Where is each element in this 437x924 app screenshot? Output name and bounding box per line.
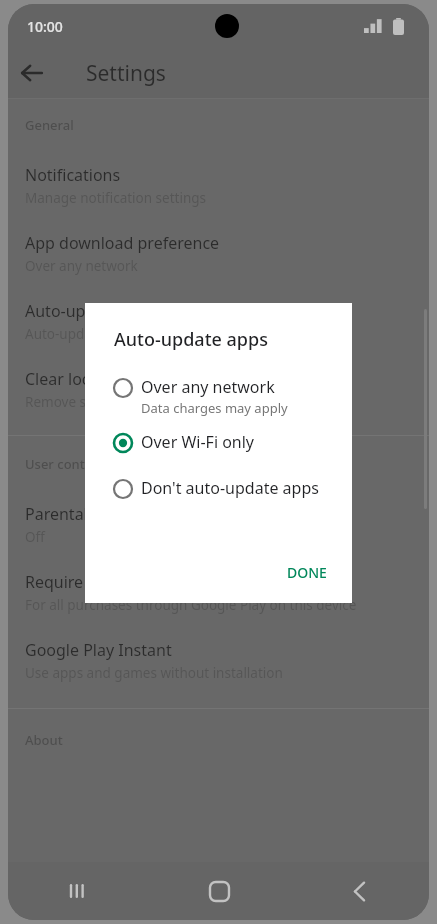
staticText: Notifications xyxy=(25,164,121,186)
button[interactable]: Require authentication for purchases xyxy=(8,560,429,628)
staticText: For all purchases through Google Play on… xyxy=(25,596,357,614)
button[interactable]: Recents xyxy=(8,862,149,920)
staticText: Don't auto-update apps xyxy=(141,477,319,499)
button[interactable]: DONE xyxy=(276,556,338,589)
staticText: Parental controls xyxy=(25,503,153,525)
staticText: Over any network xyxy=(25,257,138,275)
staticText: Over any network xyxy=(141,376,275,398)
staticText: Clear local search history xyxy=(25,368,213,390)
staticText: App download preference xyxy=(25,232,220,254)
button[interactable]: Over Wi-Fi only xyxy=(85,429,352,457)
staticText: Off xyxy=(25,528,45,546)
button[interactable]: Over any network xyxy=(85,374,352,419)
staticText: Google Play Instant xyxy=(25,639,172,661)
staticText: DONE xyxy=(287,563,327,582)
staticText: Over Wi-Fi only xyxy=(141,431,255,453)
staticText: Auto-update apps over Wi-Fi only xyxy=(25,325,235,343)
staticText: 10:00 xyxy=(27,17,63,36)
button[interactable]: Parental controls xyxy=(8,492,429,560)
button[interactable]: App download preference xyxy=(8,221,429,289)
staticText: Remove searches on this device xyxy=(25,393,226,411)
staticText: User controls xyxy=(25,455,108,473)
staticText: Auto-update apps xyxy=(25,300,160,322)
staticText: Require authentication for purchases xyxy=(25,571,304,593)
button[interactable]: Auto-update apps xyxy=(8,289,429,357)
button[interactable]: Don't auto-update apps xyxy=(85,475,352,503)
button[interactable]: Back xyxy=(289,862,429,920)
button[interactable]: Notifications xyxy=(8,153,429,221)
button[interactable]: Clear local search history xyxy=(8,357,429,425)
button[interactable]: Home xyxy=(149,862,289,920)
staticText: General xyxy=(25,116,74,134)
staticText: Manage notification settings xyxy=(25,189,207,207)
staticText: About xyxy=(25,731,63,749)
staticText: Use apps and games without installation xyxy=(25,664,283,682)
button[interactable]: Google Play Instant xyxy=(8,628,429,696)
staticText: Data charges may apply xyxy=(141,399,288,417)
button[interactable]: Back xyxy=(8,49,56,97)
staticText: Auto-update apps xyxy=(114,327,268,352)
staticText: Settings xyxy=(86,59,166,88)
